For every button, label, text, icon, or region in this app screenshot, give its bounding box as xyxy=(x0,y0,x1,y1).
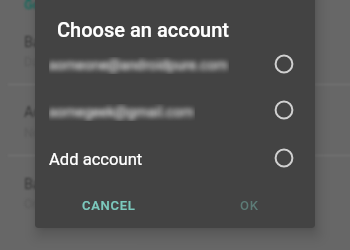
staticText: Choose an account xyxy=(57,18,229,41)
staticText: OK xyxy=(240,198,259,213)
staticText: Google xyxy=(24,0,66,12)
staticText: somegeek@gmail.com xyxy=(49,104,195,121)
staticText: Backup xyxy=(24,34,72,51)
button[interactable]: CANCEL xyxy=(70,192,146,220)
other: Add account xyxy=(274,148,294,168)
staticText: Data xyxy=(24,54,50,69)
staticText: CANCEL xyxy=(82,198,136,213)
other: Select account 2 xyxy=(274,100,294,120)
staticText: On xyxy=(24,196,40,211)
button[interactable]: Add account xyxy=(41,133,309,173)
other: Select account 1 xyxy=(274,54,294,74)
button[interactable]: Account 2 xyxy=(41,92,309,132)
staticText: None xyxy=(24,125,54,140)
staticText: Add account xyxy=(49,150,143,169)
button[interactable]: OK xyxy=(227,192,277,220)
staticText: Account xyxy=(24,104,78,121)
staticText: Backup xyxy=(24,176,72,193)
staticText: someone@androidpure.com xyxy=(49,57,229,74)
button[interactable]: Account 1 xyxy=(41,45,309,85)
